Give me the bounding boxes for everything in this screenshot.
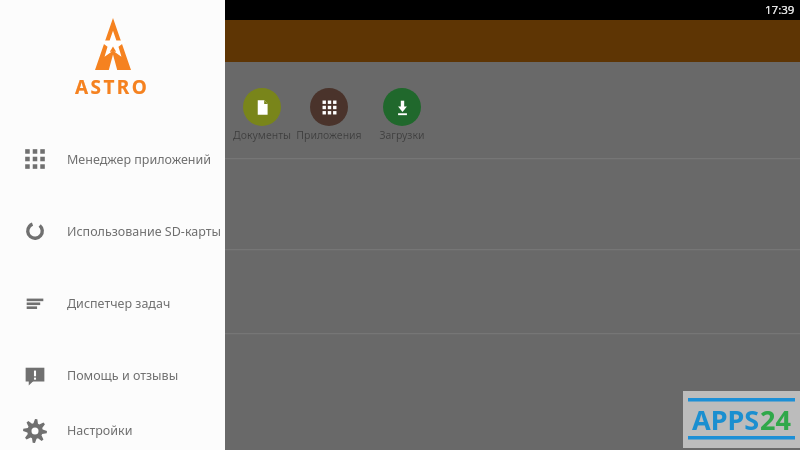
button[interactable]: Настройки [0,411,225,450]
staticText: 24 [760,401,791,438]
staticText: APPS [692,401,760,438]
button[interactable]: Downloads [363,88,441,142]
staticText: Диспетчер задач [67,295,171,312]
staticText: ASTRO [75,74,150,100]
staticText: Документы [233,128,291,142]
button[interactable]: Applications [290,88,368,142]
button[interactable]: Помощь и отзывы [0,339,225,411]
button[interactable]: Менеджер приложений [0,123,225,195]
staticText: Использование SD-карты [67,223,221,240]
button[interactable]: Использование SD-карты [0,195,225,267]
staticText: 17:39 [765,2,795,18]
staticText: Помощь и отзывы [67,367,179,384]
button[interactable]: Диспетчер задач [0,267,225,339]
staticText: Приложения [296,128,362,142]
staticText: Настройки [67,422,133,439]
staticText: Менеджер приложений [67,151,212,168]
button[interactable]: Documents [223,88,301,142]
staticText: Загрузки [379,128,425,142]
